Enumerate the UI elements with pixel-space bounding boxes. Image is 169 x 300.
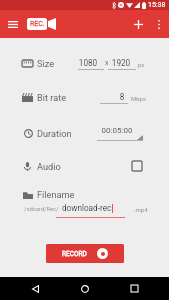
button[interactable]: Home: [71, 277, 99, 300]
staticText: Audio: [37, 161, 61, 172]
button[interactable]: Back: [21, 277, 49, 300]
staticText: download-rec: [62, 203, 112, 213]
staticText: 00:05:00: [94, 126, 140, 135]
button[interactable]: Add preset: [127, 10, 149, 38]
button[interactable]: 8: [100, 88, 128, 106]
button[interactable]: 1080: [78, 54, 104, 72]
staticText: 1920: [107, 58, 135, 68]
button[interactable]: More options: [149, 10, 169, 38]
staticText: Filename: [37, 189, 75, 200]
staticText: Duration: [37, 128, 72, 139]
staticText: 15:38: [148, 1, 166, 9]
staticText: 1080: [75, 58, 101, 68]
staticText: REC.: [30, 20, 45, 28]
button[interactable]: Record audio: [128, 157, 146, 175]
button[interactable]: download-rec: [56, 202, 125, 218]
button[interactable]: 1920: [108, 54, 136, 72]
staticText: px: [138, 61, 145, 68]
button[interactable]: 00:05:00: [97, 124, 143, 142]
staticText: Mbps: [131, 95, 147, 102]
button[interactable]: RECORD: [46, 244, 124, 263]
staticText: /sdcard/Rec/: [24, 206, 59, 213]
staticText: x: [105, 59, 109, 67]
staticText: .mp4: [134, 206, 148, 213]
staticText: Bit rate: [37, 92, 67, 103]
button[interactable]: Open navigation drawer: [2, 10, 24, 38]
staticText: 8: [108, 92, 136, 102]
staticText: RECORD: [62, 250, 87, 258]
staticText: Size: [37, 58, 55, 69]
button[interactable]: Recent apps: [120, 277, 148, 300]
